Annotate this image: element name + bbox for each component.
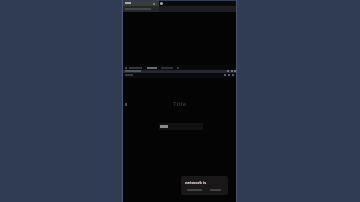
staticText: Title	[173, 100, 187, 108]
button[interactable]	[159, 123, 203, 130]
staticText: network is	[185, 180, 207, 185]
